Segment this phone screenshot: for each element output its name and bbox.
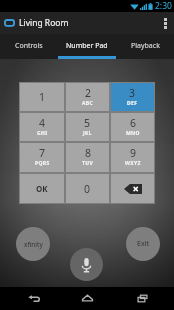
staticText: 9: [130, 146, 137, 160]
button[interactable]: 6: [111, 113, 154, 141]
staticText: 3: [129, 86, 136, 100]
button[interactable]: 7: [20, 143, 64, 172]
button[interactable]: 2: [66, 83, 109, 111]
button[interactable]: Number Pad: [58, 34, 116, 59]
button[interactable]: Controls: [0, 34, 58, 59]
staticText: 0: [84, 182, 91, 196]
staticText: xfinity: [24, 240, 43, 249]
staticText: 1: [39, 90, 46, 104]
staticText: Playback: [131, 41, 160, 51]
button[interactable]: 1: [20, 83, 64, 111]
staticText: 8: [85, 146, 92, 160]
staticText: Controls: [15, 41, 43, 51]
staticText: ABC: [82, 100, 94, 107]
staticText: TUV: [82, 160, 94, 167]
staticText: Exit: [137, 239, 149, 249]
button[interactable]: xfinity: [16, 227, 50, 261]
staticText: MNO: [126, 130, 140, 137]
staticText: PQRS: [35, 160, 50, 167]
staticText: 7: [39, 146, 46, 160]
button[interactable]: 4: [20, 113, 64, 141]
button[interactable]: Recents: [120, 287, 164, 310]
button[interactable]: 0: [66, 174, 109, 203]
staticText: 2: [85, 86, 92, 100]
staticText: 4: [39, 116, 46, 130]
button[interactable]: 5: [66, 113, 109, 141]
staticText: JKL: [83, 130, 92, 137]
staticText: Number Pad: [66, 41, 108, 51]
button[interactable]: Playback: [116, 34, 174, 59]
button[interactable]: Home: [65, 287, 109, 310]
button[interactable]: 3: [111, 83, 154, 111]
button[interactable]: 8: [66, 143, 109, 172]
staticText: 5: [84, 116, 91, 130]
staticText: OK: [36, 183, 48, 194]
button[interactable]: More options: [156, 12, 174, 34]
button[interactable]: Delete: [111, 174, 154, 203]
staticText: 6: [130, 116, 137, 130]
button[interactable]: OK: [20, 174, 64, 203]
staticText: WXYZ: [125, 160, 141, 167]
other: Delete: [124, 184, 142, 194]
button[interactable]: Back: [11, 287, 55, 310]
staticText: Living Room: [19, 17, 69, 29]
button[interactable]: Exit: [126, 227, 160, 261]
staticText: DEF: [127, 100, 138, 107]
button[interactable]: Voice search: [70, 248, 103, 281]
staticText: 2:30: [155, 0, 172, 12]
button[interactable]: 9: [111, 143, 154, 172]
staticText: GHI: [37, 130, 48, 137]
